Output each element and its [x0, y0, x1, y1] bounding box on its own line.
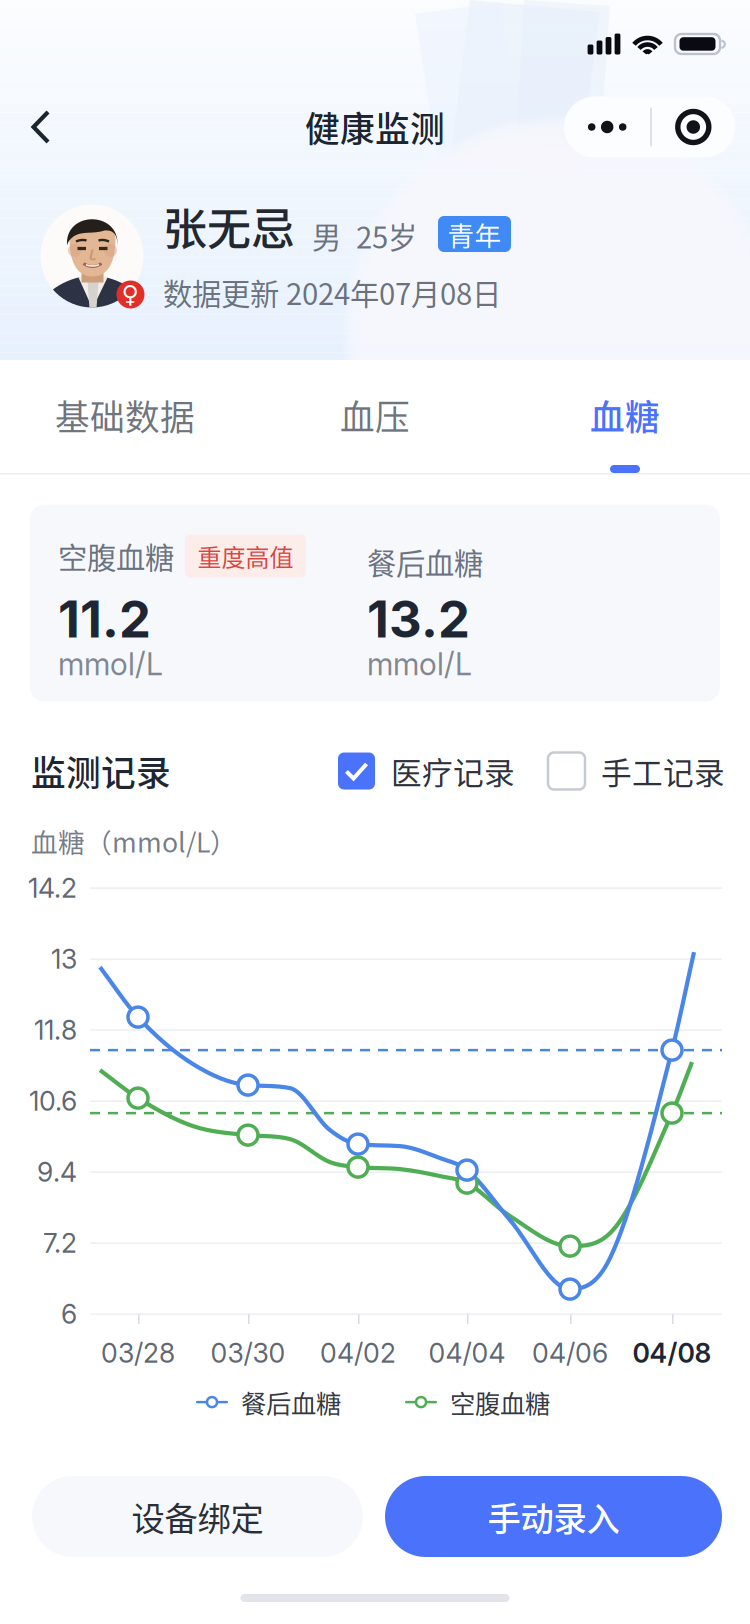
staticText: 03/28 — [101, 1337, 175, 1369]
staticText: 13.2 — [367, 588, 470, 650]
staticText: 11.8 — [34, 1014, 77, 1046]
button[interactable]: 手动录入 — [385, 1476, 722, 1557]
staticText: 手动录入 — [487, 1492, 619, 1541]
staticText: mmol/L — [58, 645, 163, 683]
button[interactable]: Back — [0, 88, 82, 166]
staticText: 9.4 — [37, 1156, 77, 1188]
button[interactable]: 基础数据 — [0, 360, 250, 473]
staticText: 04/06 — [532, 1337, 608, 1369]
button[interactable]: 血压 — [250, 360, 500, 473]
staticText: 14.2 — [28, 872, 77, 904]
staticText: 04/02 — [320, 1337, 396, 1369]
staticText: 7.2 — [43, 1227, 77, 1259]
button[interactable]: 设备绑定 — [32, 1476, 363, 1557]
button[interactable]: 手工记录 — [548, 749, 725, 793]
staticText: 03/30 — [210, 1337, 285, 1369]
button[interactable]: More — [564, 96, 650, 157]
staticText: 男 — [312, 214, 341, 257]
staticText: ♀ — [121, 280, 139, 308]
staticText: 设备绑定 — [131, 1492, 263, 1541]
staticText: 空腹血糖 — [58, 535, 174, 577]
staticText: 11.2 — [58, 588, 151, 650]
staticText: 监测记录 — [31, 746, 171, 796]
staticText: mmol/L — [367, 645, 472, 683]
staticText: 13 — [51, 943, 77, 975]
staticText: 青年 — [447, 215, 501, 253]
staticText: 空腹血糖 — [450, 1384, 550, 1420]
button[interactable]: 血糖 — [500, 360, 750, 473]
staticText: 基础数据 — [55, 390, 195, 440]
staticText: 血糖（mmol/L） — [31, 821, 237, 860]
staticText: 04/08 — [632, 1337, 711, 1369]
staticText: 04/04 — [428, 1337, 505, 1369]
staticText: 10.6 — [29, 1085, 77, 1117]
staticText: 重度高值 — [197, 539, 293, 573]
button[interactable]: Close — [652, 96, 735, 157]
staticText: 餐后血糖 — [241, 1384, 341, 1420]
staticText: 健康监测 — [305, 102, 445, 152]
button[interactable]: 医疗记录 — [338, 749, 515, 793]
staticText: 手工记录 — [601, 749, 725, 793]
staticText: 6 — [61, 1298, 77, 1330]
staticText: 血压 — [340, 390, 410, 440]
staticText: 血糖 — [590, 390, 660, 440]
staticText: 25岁 — [356, 214, 417, 257]
staticText: 数据更新 2024年07月08日 — [163, 271, 501, 313]
staticText: 张无忌 — [163, 194, 295, 258]
staticText: 餐后血糖 — [367, 540, 483, 583]
staticText: 医疗记录 — [391, 749, 515, 793]
